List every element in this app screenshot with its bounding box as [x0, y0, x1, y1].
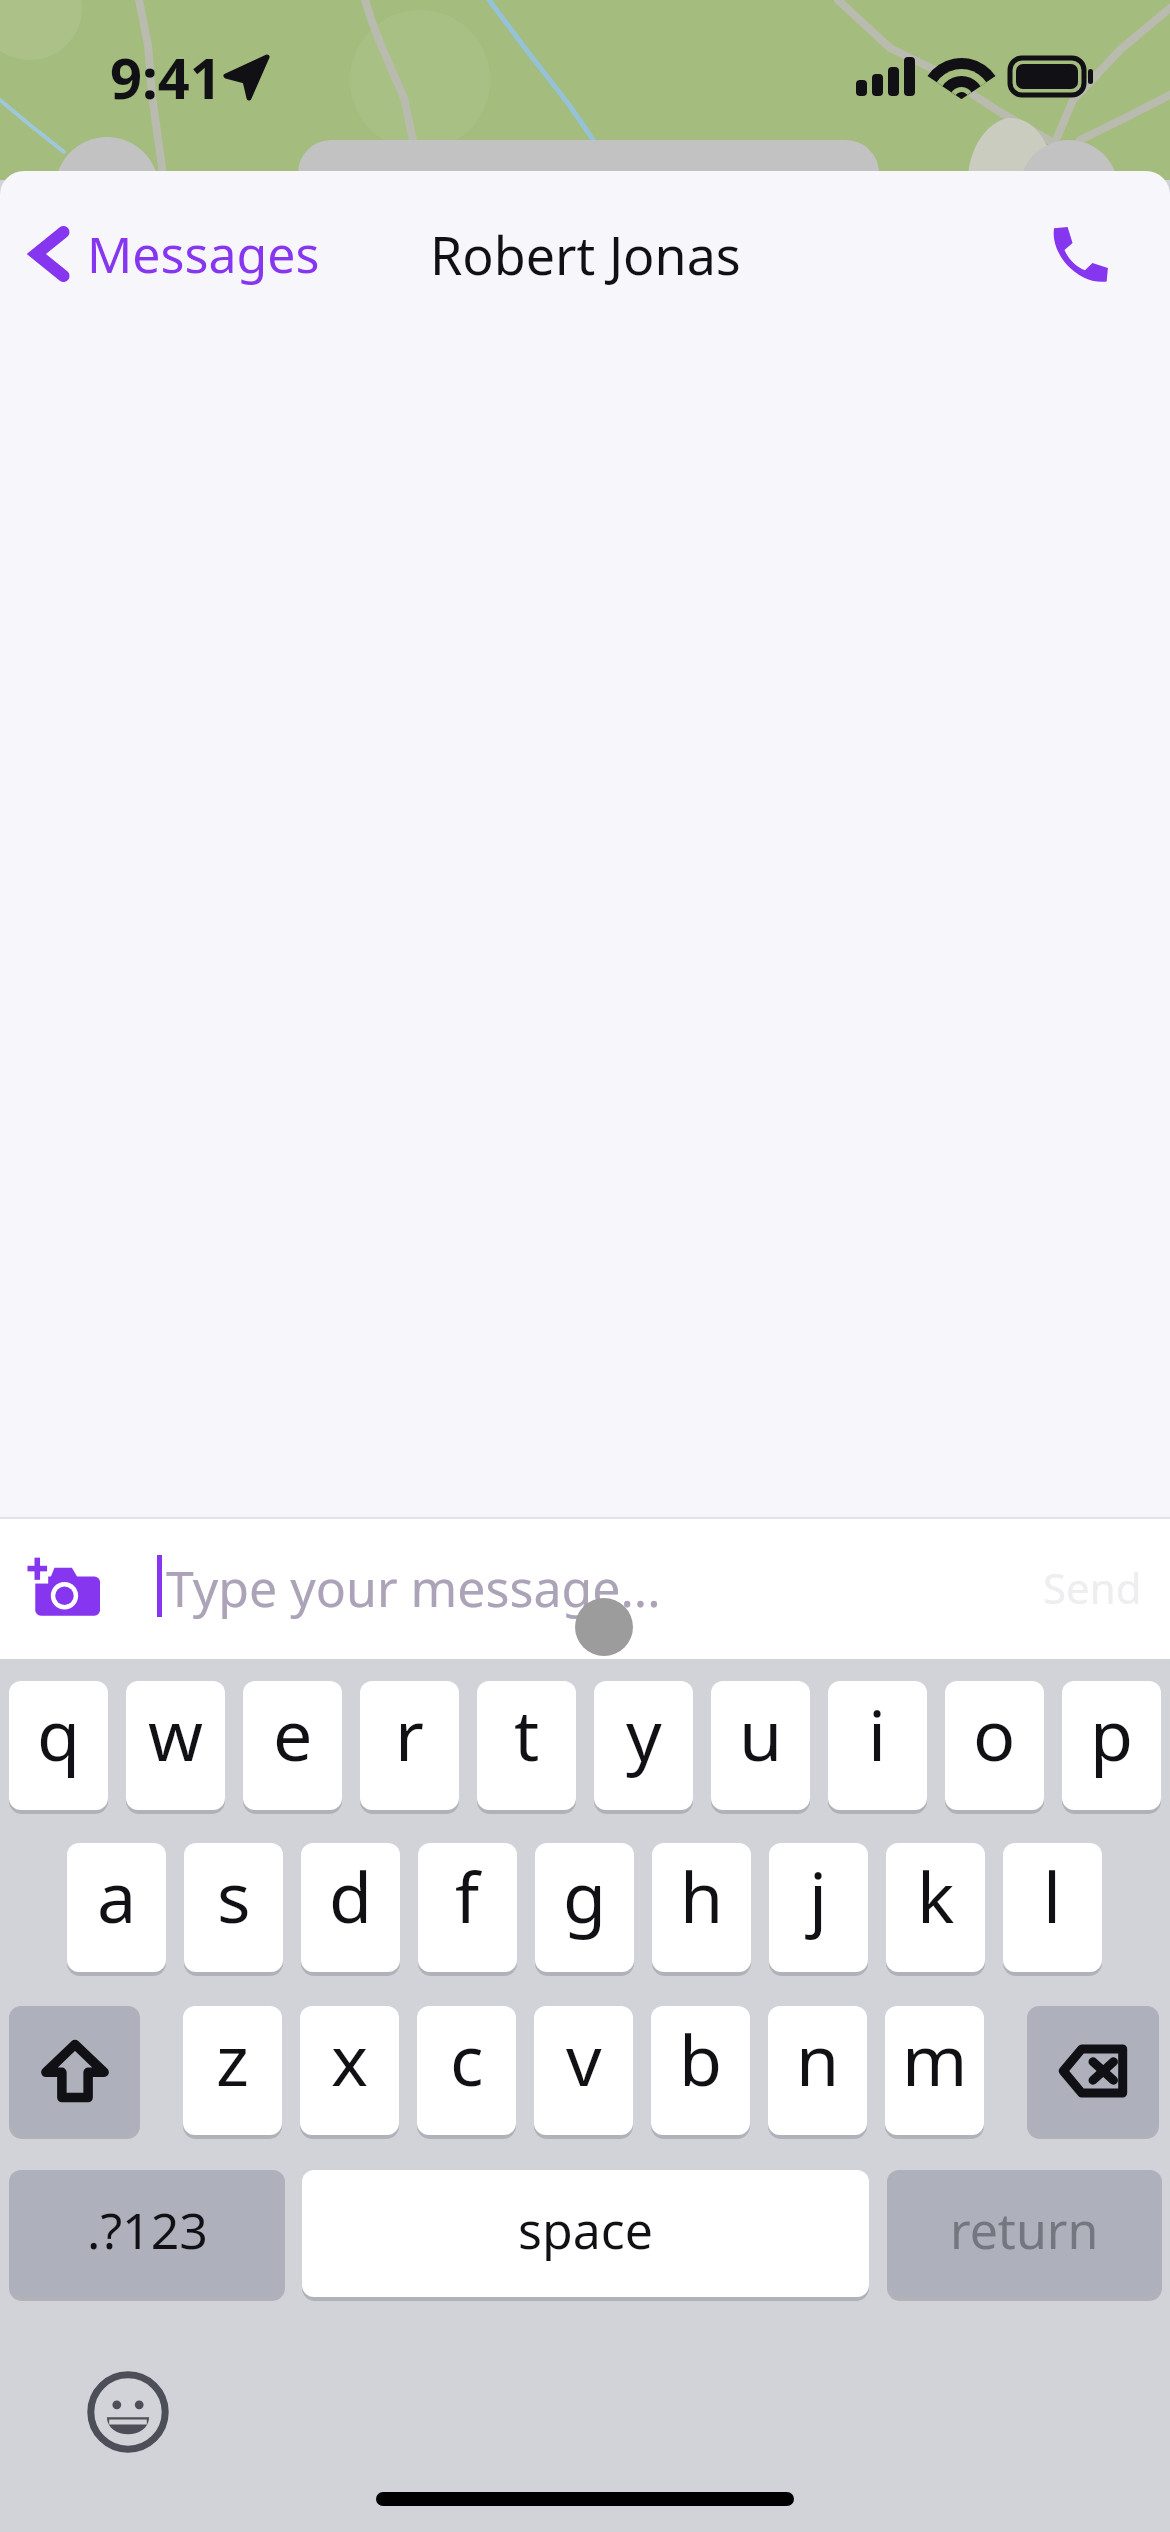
staticText: v [566, 2011, 602, 2106]
button[interactable]: f [418, 1843, 517, 1972]
button[interactable]: Shift [9, 2006, 140, 2135]
button[interactable]: s [184, 1843, 283, 1972]
staticText: a [97, 1848, 137, 1943]
staticText: m [902, 2011, 968, 2106]
staticText: r [395, 1686, 424, 1781]
button[interactable]: u [711, 1681, 810, 1810]
button[interactable]: Backspace [1027, 2006, 1159, 2135]
button[interactable]: space [302, 2170, 869, 2297]
staticText: u [739, 1686, 783, 1781]
staticText: z [216, 2011, 249, 2106]
staticText: o [973, 1686, 1016, 1781]
button[interactable]: t [477, 1681, 576, 1810]
staticText: g [563, 1848, 607, 1943]
button[interactable]: a [67, 1843, 166, 1972]
button[interactable]: w [126, 1681, 225, 1810]
button[interactable]: c [417, 2006, 516, 2135]
staticText: s [217, 1848, 251, 1943]
button[interactable]: return [887, 2170, 1162, 2297]
button[interactable]: Messages [0, 220, 320, 288]
button[interactable]: Send [1043, 1559, 1142, 1616]
staticText: t [514, 1686, 540, 1781]
button[interactable]: e [243, 1681, 342, 1810]
staticText: h [680, 1848, 724, 1943]
button[interactable]: h [652, 1843, 751, 1972]
staticText: Messages [87, 220, 320, 288]
button[interactable]: d [301, 1843, 400, 1972]
staticText: y [626, 1686, 662, 1781]
button[interactable]: i [828, 1681, 927, 1810]
staticText: space [518, 2196, 653, 2264]
staticText: l [1043, 1848, 1062, 1943]
button[interactable]: x [300, 2006, 399, 2135]
staticText: j [809, 1848, 828, 1943]
staticText: p [1090, 1686, 1134, 1781]
staticText: 9:41 [110, 39, 222, 115]
staticText: b [679, 2011, 723, 2106]
staticText: f [455, 1848, 480, 1943]
staticText: w [148, 1686, 204, 1781]
staticText: .?123 [87, 2196, 208, 2264]
staticText: return [950, 2196, 1099, 2264]
button[interactable]: r [360, 1681, 459, 1810]
button[interactable]: Emoji [88, 2372, 168, 2452]
button[interactable]: m [885, 2006, 984, 2135]
staticText: Robert Jonas [430, 219, 741, 290]
button[interactable]: v [534, 2006, 633, 2135]
button[interactable]: o [945, 1681, 1044, 1810]
staticText: e [273, 1686, 313, 1781]
button[interactable]: j [769, 1843, 868, 1972]
staticText: q [37, 1686, 81, 1781]
staticText: n [796, 2011, 840, 2106]
button[interactable]: n [768, 2006, 867, 2135]
button[interactable]: k [886, 1843, 985, 1972]
staticText: i [868, 1686, 887, 1781]
button[interactable]: y [594, 1681, 693, 1810]
button[interactable]: .?123 [9, 2170, 285, 2297]
button[interactable]: q [9, 1681, 108, 1810]
button[interactable]: Add photo [18, 1543, 108, 1633]
button[interactable]: b [651, 2006, 750, 2135]
button[interactable]: Call [1040, 213, 1120, 293]
staticText: Send [1043, 1559, 1142, 1616]
staticText: c [450, 2011, 484, 2106]
button[interactable]: g [535, 1843, 634, 1972]
button[interactable]: l [1003, 1843, 1102, 1972]
staticText: x [331, 2011, 369, 2106]
button[interactable]: z [183, 2006, 282, 2135]
staticText: k [917, 1848, 955, 1943]
staticText: Type your message... [166, 1554, 661, 1622]
staticText: d [329, 1848, 373, 1943]
button[interactable]: p [1062, 1681, 1161, 1810]
